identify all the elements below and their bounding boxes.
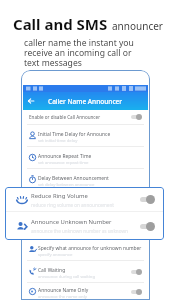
staticText: Call and SMS xyxy=(13,14,108,34)
button[interactable]: Back xyxy=(27,97,35,105)
staticText: Caller Name Announcer xyxy=(48,97,123,106)
button[interactable]: Announce Name Only xyxy=(23,283,148,300)
staticText: set delay between announce xyxy=(38,182,95,188)
staticText: Call Waiting xyxy=(38,267,66,274)
staticText: caller name the instant you receive an i… xyxy=(24,37,134,68)
button[interactable]: Initial Time Delay for Announce xyxy=(23,125,148,146)
button[interactable]: Reduce Ring Volume xyxy=(5,187,164,211)
staticText: set initial time delay xyxy=(38,138,78,144)
button[interactable]: Announce Repeat Time xyxy=(23,147,148,168)
staticText: Reduce Ring Volume xyxy=(31,192,88,200)
staticText: Announce Unknown Number xyxy=(31,218,112,226)
staticText: Enable or disable Call Announcer xyxy=(29,114,101,120)
staticText: Initial Time Delay for Announce xyxy=(38,131,111,138)
button[interactable]: Enable or disable Call Announcer xyxy=(23,110,148,124)
staticText: Announce Repeat Time xyxy=(38,153,92,160)
button[interactable]: Announce Unknown Number xyxy=(5,212,164,239)
button[interactable]: Call Waiting xyxy=(23,261,148,282)
button[interactable]: Delay Between Announcement xyxy=(23,169,148,190)
staticText: set announce repeat time xyxy=(38,160,89,166)
staticText: announcer xyxy=(112,19,163,33)
staticText: announce during call waiting xyxy=(38,274,96,280)
staticText: announce the name only xyxy=(38,294,87,300)
button[interactable]: Specify what announce for unknown number xyxy=(23,239,148,260)
staticText: Announce Name Only xyxy=(38,287,89,294)
staticText: announce the unknown number as unknown xyxy=(31,228,128,234)
staticText: specify announce xyxy=(38,252,73,258)
staticText: reduce ring volume on announcement xyxy=(31,202,114,208)
staticText: Specify what announce for unknown number xyxy=(38,245,142,252)
staticText: Delay Between Announcement xyxy=(38,175,109,182)
